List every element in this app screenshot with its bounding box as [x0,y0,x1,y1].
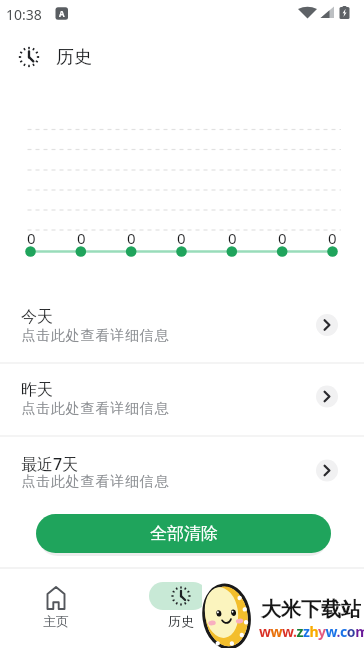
staticText: 0 [177,228,186,245]
staticText: 点击此处查看详细信息 [21,327,169,345]
staticText: 10:38 [6,5,42,24]
staticText: 今天 [21,307,53,327]
staticText: 历史 [56,46,92,69]
staticText: 0 [328,228,337,245]
staticText: 大米下载站 [261,597,361,622]
staticText: www.zzhyw.com [259,622,364,641]
staticText: 历史 [168,613,194,629]
button[interactable]: 全部清除 [36,514,331,553]
button[interactable]: 昨天 [0,363,364,436]
staticText: 0 [127,228,136,245]
staticText: 0 [228,228,237,245]
staticText: 点击此处查看详细信息 [21,473,169,491]
staticText: 最近7天 [21,453,79,475]
staticText: 0 [278,228,287,245]
staticText: 0 [27,228,36,245]
staticText: 昨天 [21,380,53,400]
button[interactable]: 历史 [141,572,221,636]
button[interactable]: 主页 [16,572,96,636]
staticText: A [59,8,65,19]
staticText: 全部清除 [150,523,218,544]
button[interactable]: 最近7天 [0,436,364,509]
button[interactable]: 今天 [0,290,364,363]
staticText: 主页 [43,613,69,629]
staticText: 点击此处查看详细信息 [21,400,169,418]
staticText: 0 [77,228,86,245]
